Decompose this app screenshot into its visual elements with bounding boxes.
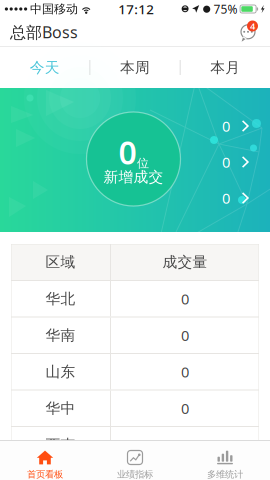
staticText: 本周 [120,58,150,76]
staticText: 0 [118,131,136,173]
staticText: 17:12 [118,0,154,18]
staticText: 0 [222,152,230,172]
staticText: 成交量 [162,253,207,271]
button[interactable]: Messages [236,20,260,44]
staticText: 西南 [45,436,75,454]
staticText: 业绩指标 [117,468,153,480]
staticText: 0 [222,116,230,136]
staticText: 中国移动 [30,2,78,16]
button[interactable]: 多维统计 [180,441,270,480]
button[interactable]: 本月 [181,47,270,88]
staticText: 本月 [210,58,240,76]
button[interactable]: 今天 [0,47,89,88]
staticText: 今天 [30,58,60,76]
staticText: 华中 [45,399,75,417]
staticText: 首页看板 [27,468,63,480]
button[interactable]: 0 [222,155,249,169]
staticText: 山东 [45,363,75,381]
staticText: 0 [181,435,189,454]
button[interactable]: 本周 [90,47,180,88]
staticText: 0 [181,398,189,418]
staticText: 75% [214,1,238,17]
staticText: 0 [222,188,230,208]
staticText: 0 [181,289,189,308]
staticText: 位 [137,156,149,171]
staticText: 多维统计 [207,468,243,480]
staticText: 新增成交 [103,168,163,186]
staticText: 总部Boss [10,21,78,43]
button[interactable]: 0 [222,119,249,133]
staticText: 华南 [45,326,75,344]
staticText: 西北 [45,472,75,480]
staticText: 0 [181,325,189,345]
staticText: 区域 [45,253,75,271]
button[interactable]: 首页看板 [0,441,90,480]
staticText: 0 [181,362,189,381]
staticText: 华北 [45,290,75,308]
button[interactable]: 0 [222,191,249,205]
button[interactable]: 业绩指标 [90,441,180,480]
staticText: 4 [250,20,255,32]
